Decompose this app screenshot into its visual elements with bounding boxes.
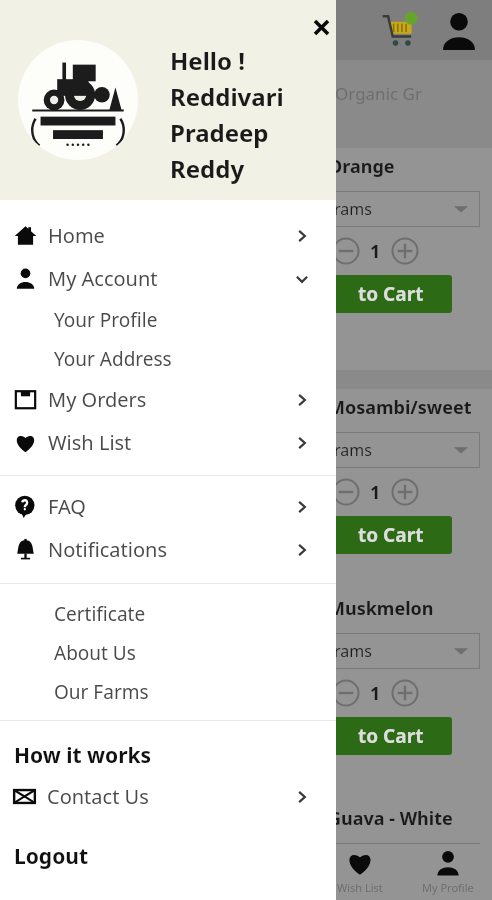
staticText: to Cart [358,281,424,307]
staticText: Reddivari [170,80,284,113]
button[interactable]: Decrease [332,478,360,506]
button[interactable]: About Us [0,633,336,672]
staticText: Mosambi/sweet [328,395,472,420]
button[interactable]: Muskmelon [300,590,492,812]
staticText: My Orders [48,386,147,413]
button[interactable]: Profile [438,10,480,52]
staticText: About Us [54,640,136,666]
staticText: 1 [370,239,381,264]
staticText: My Account [48,265,158,292]
staticText: Organic Gr [335,82,422,105]
staticText: 1 [370,891,381,900]
button[interactable]: Notifications [0,528,336,571]
staticText: rams [334,439,372,461]
staticText: rams [334,640,372,662]
staticText: Wish List [337,880,383,895]
staticText: My Profile [422,880,474,895]
staticText: Wish List [48,429,132,456]
button[interactable]: Our Farms [0,672,336,711]
staticText: Your Profile [54,307,158,333]
staticText: 1 [370,681,381,706]
staticText: Reddy [170,152,245,185]
button[interactable]: Your Address [0,339,336,378]
staticText: Home [48,222,105,249]
staticText: Hello ! [170,44,245,77]
staticText: Notifications [48,536,167,563]
button[interactable]: Increase [391,679,419,707]
button[interactable]: Guava - White [300,800,492,900]
staticText: rams [334,850,372,872]
button[interactable]: Close [306,12,336,42]
button[interactable]: Contact Us [0,775,336,818]
staticText: Your Address [54,346,172,372]
staticText: bles [280,82,313,105]
staticText: Contact Us [47,783,149,810]
staticText: How it works [14,741,152,770]
staticText: to Cart [358,723,424,749]
button[interactable]: rams [328,191,480,227]
button[interactable]: Your Profile [0,300,336,339]
button[interactable]: Certificate [0,594,336,633]
button[interactable]: My Profile [404,844,492,900]
button[interactable]: to Cart [300,516,452,554]
staticText: Our Farms [54,679,149,705]
button[interactable]: Logout [0,836,336,876]
button[interactable]: Increase [391,478,419,506]
staticText: Muskmelon [328,596,434,621]
staticText: Guava - White [328,806,453,831]
staticText: Pradeep [170,116,269,149]
button[interactable]: Increase [391,237,419,265]
button[interactable]: My Orders [0,378,336,421]
button[interactable]: Decrease [332,889,360,900]
button[interactable]: FAQ [0,485,336,528]
button[interactable]: How it works [0,735,336,775]
button[interactable]: Decrease [332,237,360,265]
button[interactable]: rams [328,843,480,879]
button[interactable]: Decrease [332,679,360,707]
staticText: 1 [370,480,381,505]
staticText: to Cart [358,522,424,548]
button[interactable]: Wish List [316,844,404,900]
button[interactable]: Mosambi/sweet [300,389,492,611]
staticText: Certificate [54,601,146,627]
button[interactable]: to Cart [300,717,452,755]
staticText: FAQ [48,493,86,520]
button[interactable]: rams [328,432,480,468]
staticText: Logout [14,842,89,871]
button[interactable]: Cart [378,8,424,54]
staticText: rams [334,198,372,220]
button[interactable]: Wish List [0,421,336,464]
staticText: Orange [328,154,395,179]
button[interactable]: My Account [0,257,336,300]
button[interactable]: Orange [300,148,492,370]
button[interactable]: to Cart [300,275,452,313]
button[interactable]: rams [328,633,480,669]
button[interactable]: Home [0,214,336,257]
